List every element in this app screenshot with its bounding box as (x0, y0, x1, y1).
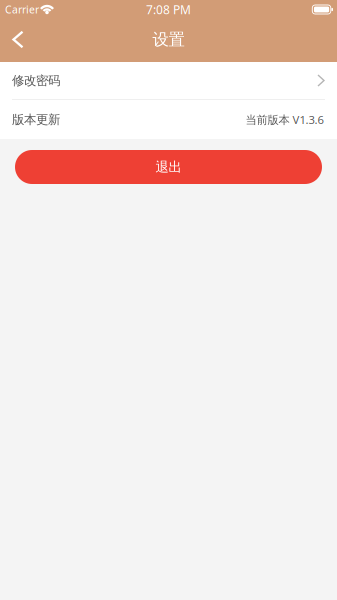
staticText: Carrier (5, 2, 39, 17)
button[interactable]: 版本更新 (0, 100, 337, 139)
staticText: 退出 (155, 159, 181, 175)
button[interactable]: 修改密码 (0, 62, 337, 99)
staticText: 当前版本 V1.3.6 (245, 112, 323, 127)
staticText: 修改密码 (12, 73, 60, 88)
staticText: 7:08 PM (146, 1, 191, 18)
staticText: 版本更新 (12, 112, 60, 127)
button[interactable]: 退出 (15, 150, 322, 184)
button[interactable]: Back (0, 27, 38, 54)
staticText: 设置 (152, 29, 184, 50)
